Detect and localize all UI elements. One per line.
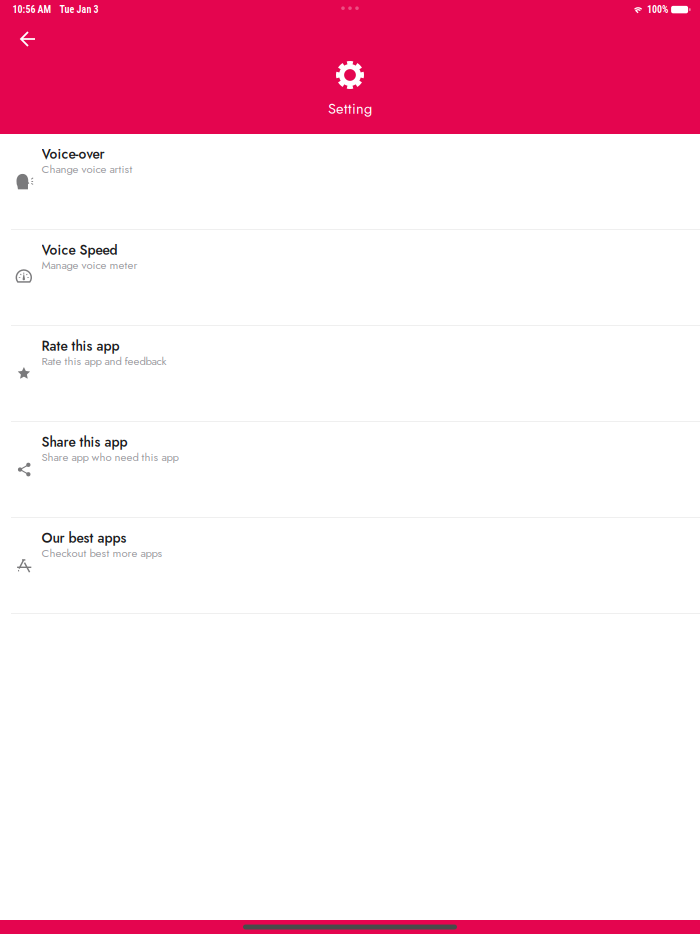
staticText: Rate this app and feedback — [41, 353, 166, 369]
button[interactable]: Share this app — [0, 422, 700, 518]
staticText: Share app who need this app — [41, 449, 178, 465]
button[interactable]: Our best apps — [0, 518, 700, 614]
staticText: Checkout best more apps — [41, 545, 162, 561]
staticText: Voice Speed — [41, 240, 117, 260]
staticText: Rate this app — [41, 336, 119, 356]
staticText: Manage voice meter — [41, 257, 137, 273]
staticText: Share this app — [41, 432, 127, 452]
button[interactable]: Voice-over — [0, 134, 700, 230]
staticText: Setting — [328, 98, 372, 119]
staticText: 100% — [647, 4, 668, 15]
button[interactable]: Rate this app — [0, 326, 700, 422]
staticText: Tue Jan 3 — [60, 4, 99, 15]
staticText: Voice-over — [41, 144, 104, 164]
staticText: Our best apps — [41, 528, 126, 548]
staticText: 10:56 AM — [13, 4, 52, 15]
button[interactable]: Back — [10, 21, 46, 57]
staticText: Change voice artist — [41, 161, 132, 177]
button[interactable]: Voice Speed — [0, 230, 700, 326]
